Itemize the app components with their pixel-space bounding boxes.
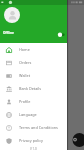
button[interactable]: Profile bbox=[0, 95, 67, 108]
staticText: V 1.0 bbox=[30, 147, 37, 150]
staticText: Wallet bbox=[19, 73, 31, 78]
staticText: Profile bbox=[19, 99, 31, 104]
button[interactable]: Toggle online status bbox=[57, 31, 65, 39]
staticText: Home bbox=[19, 47, 30, 52]
staticText: Bank Details bbox=[19, 86, 42, 91]
button[interactable]: Profile photo bbox=[4, 7, 20, 23]
staticText: Orders bbox=[19, 60, 32, 65]
staticText: Privacy policy bbox=[19, 138, 43, 143]
button[interactable]: Wallet bbox=[0, 69, 67, 82]
button[interactable]: Terms and Conditions bbox=[0, 121, 67, 134]
button[interactable]: Bank Details bbox=[0, 82, 67, 95]
button[interactable]: Home bbox=[0, 43, 67, 56]
button[interactable]: Privacy policy bbox=[0, 134, 67, 147]
staticText: Offline bbox=[3, 31, 14, 35]
button[interactable]: Language bbox=[0, 108, 67, 121]
staticText: Terms and Conditions bbox=[19, 125, 58, 130]
button[interactable]: Orders bbox=[0, 56, 67, 69]
staticText: Language bbox=[19, 112, 37, 117]
button[interactable]: Chat bbox=[70, 131, 84, 149]
